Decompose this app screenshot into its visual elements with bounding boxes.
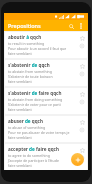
button[interactable]: Play audio [78,42,85,49]
staticText: faire semblant [8,135,32,140]
staticText: to agree to do something [8,153,50,158]
button[interactable]: Favorite [78,146,86,154]
button[interactable]: s'abstenir de faire qqch [5,88,87,114]
staticText: abuser de qqch [8,118,43,124]
button[interactable]: Favorite [78,34,86,42]
button[interactable]: Play audio [78,70,85,77]
button[interactable]: Add [71,153,84,166]
staticText: to abstain from doing something [8,97,63,102]
button[interactable]: aboutir à qqch [5,32,87,58]
staticText: Pour ne pas abuser de votre temps je vai… [8,130,76,135]
staticText: accepter de faire qqch [8,146,59,152]
button[interactable]: s'abstenir de qqch [5,60,87,86]
staticText: to abuse of something [8,125,46,130]
button[interactable]: Favorite [78,90,86,98]
staticText: S'abstenir de voter pour ce parti [8,102,61,107]
button[interactable]: Play audio [78,98,85,105]
button[interactable]: Search [66,21,76,31]
button[interactable]: Play audio [78,154,85,161]
staticText: faire semblant [8,79,32,84]
staticText: faire semblant [8,51,32,56]
staticText: S'abstenir de toute boisson [8,74,53,79]
staticText: s'abstenir de qqch [8,62,50,68]
button[interactable]: abuser de qqch [5,116,87,142]
staticText: faire semblant [8,107,32,112]
staticText: s'abstenir de faire qqch [8,90,62,96]
staticText: Prepositions [8,22,41,29]
button[interactable]: accepter de faire qqch [5,144,87,170]
button[interactable]: Play audio [78,126,85,133]
button[interactable]: Favorite [78,62,86,70]
button[interactable]: Favorite [78,118,86,126]
staticText: Pour aboutir à un accord il faut que for… [8,46,76,51]
button[interactable]: More options [76,21,85,30]
staticText: to abstain from something [8,69,52,74]
staticText: aboutir à qqch [8,34,42,40]
staticText: J'accepte de participer à l'étude [8,158,59,163]
staticText: to result in something [8,41,45,46]
staticText: faire semblant [8,163,32,168]
